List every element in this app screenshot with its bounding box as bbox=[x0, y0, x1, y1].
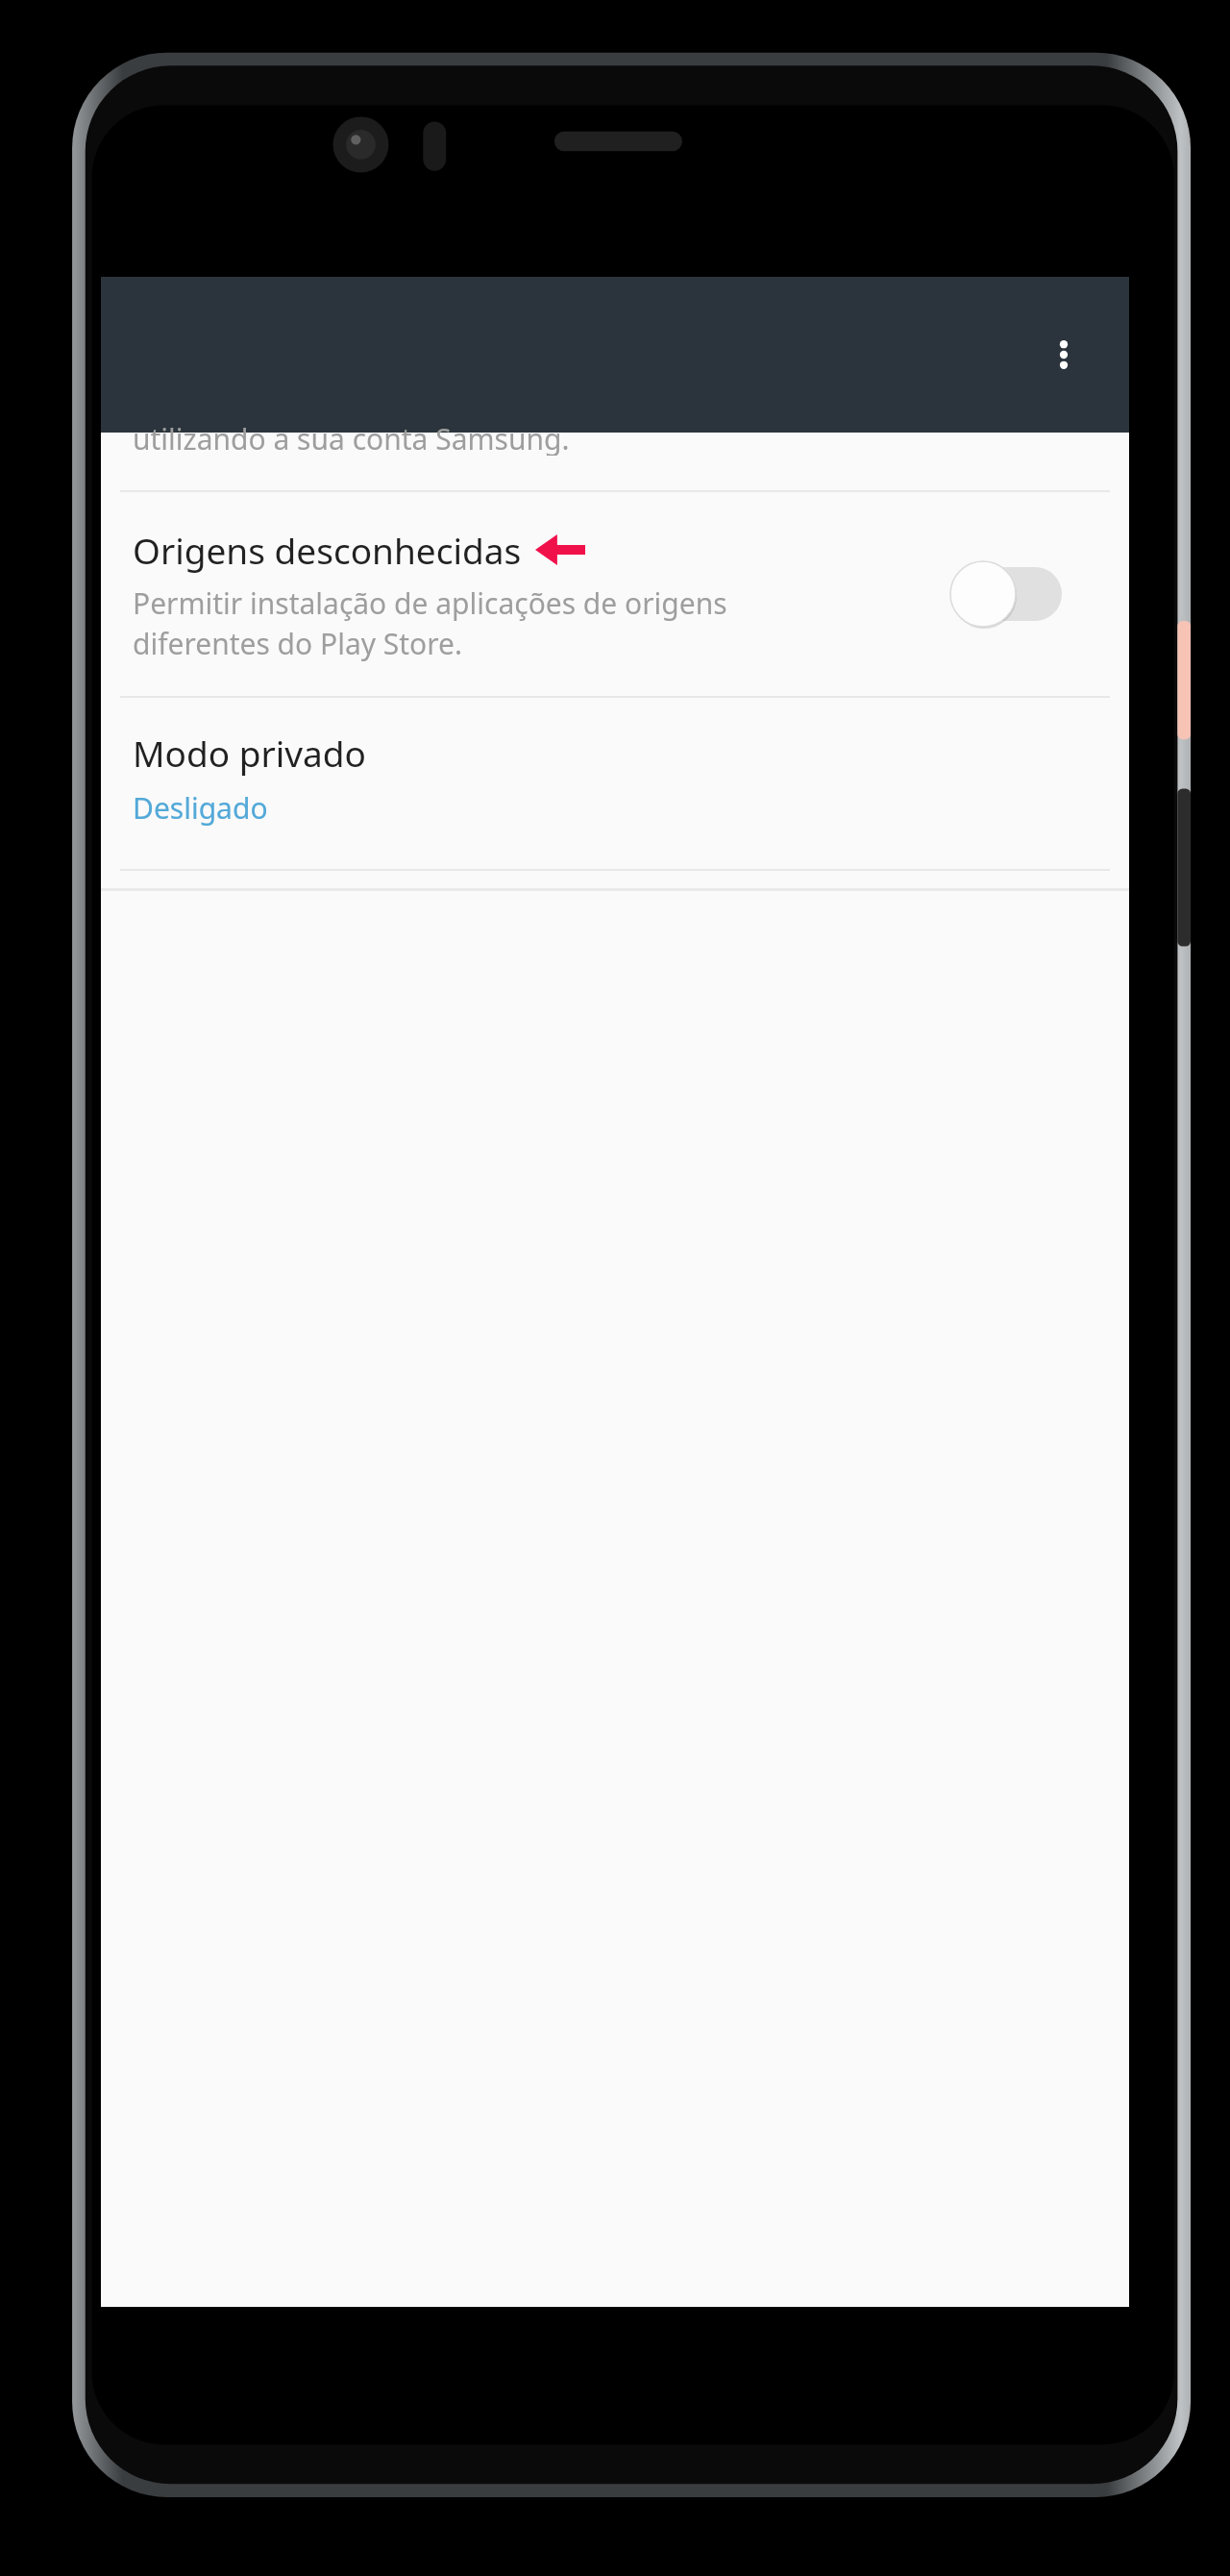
staticText: Desligado bbox=[133, 788, 268, 828]
button[interactable]: Origens desconhecidas toggle bbox=[948, 559, 1062, 629]
button[interactable]: More options bbox=[1016, 307, 1112, 403]
button[interactable]: Modo privado bbox=[101, 698, 1129, 869]
staticText: Permitir instalação de aplicações de ori… bbox=[133, 583, 727, 663]
staticText: Modo privado bbox=[133, 729, 366, 777]
button[interactable]: Origens desconhecidas bbox=[101, 492, 1129, 696]
staticText: utilizando a sua conta Samsung. bbox=[133, 419, 570, 456]
staticText: Origens desconhecidas bbox=[133, 526, 522, 574]
